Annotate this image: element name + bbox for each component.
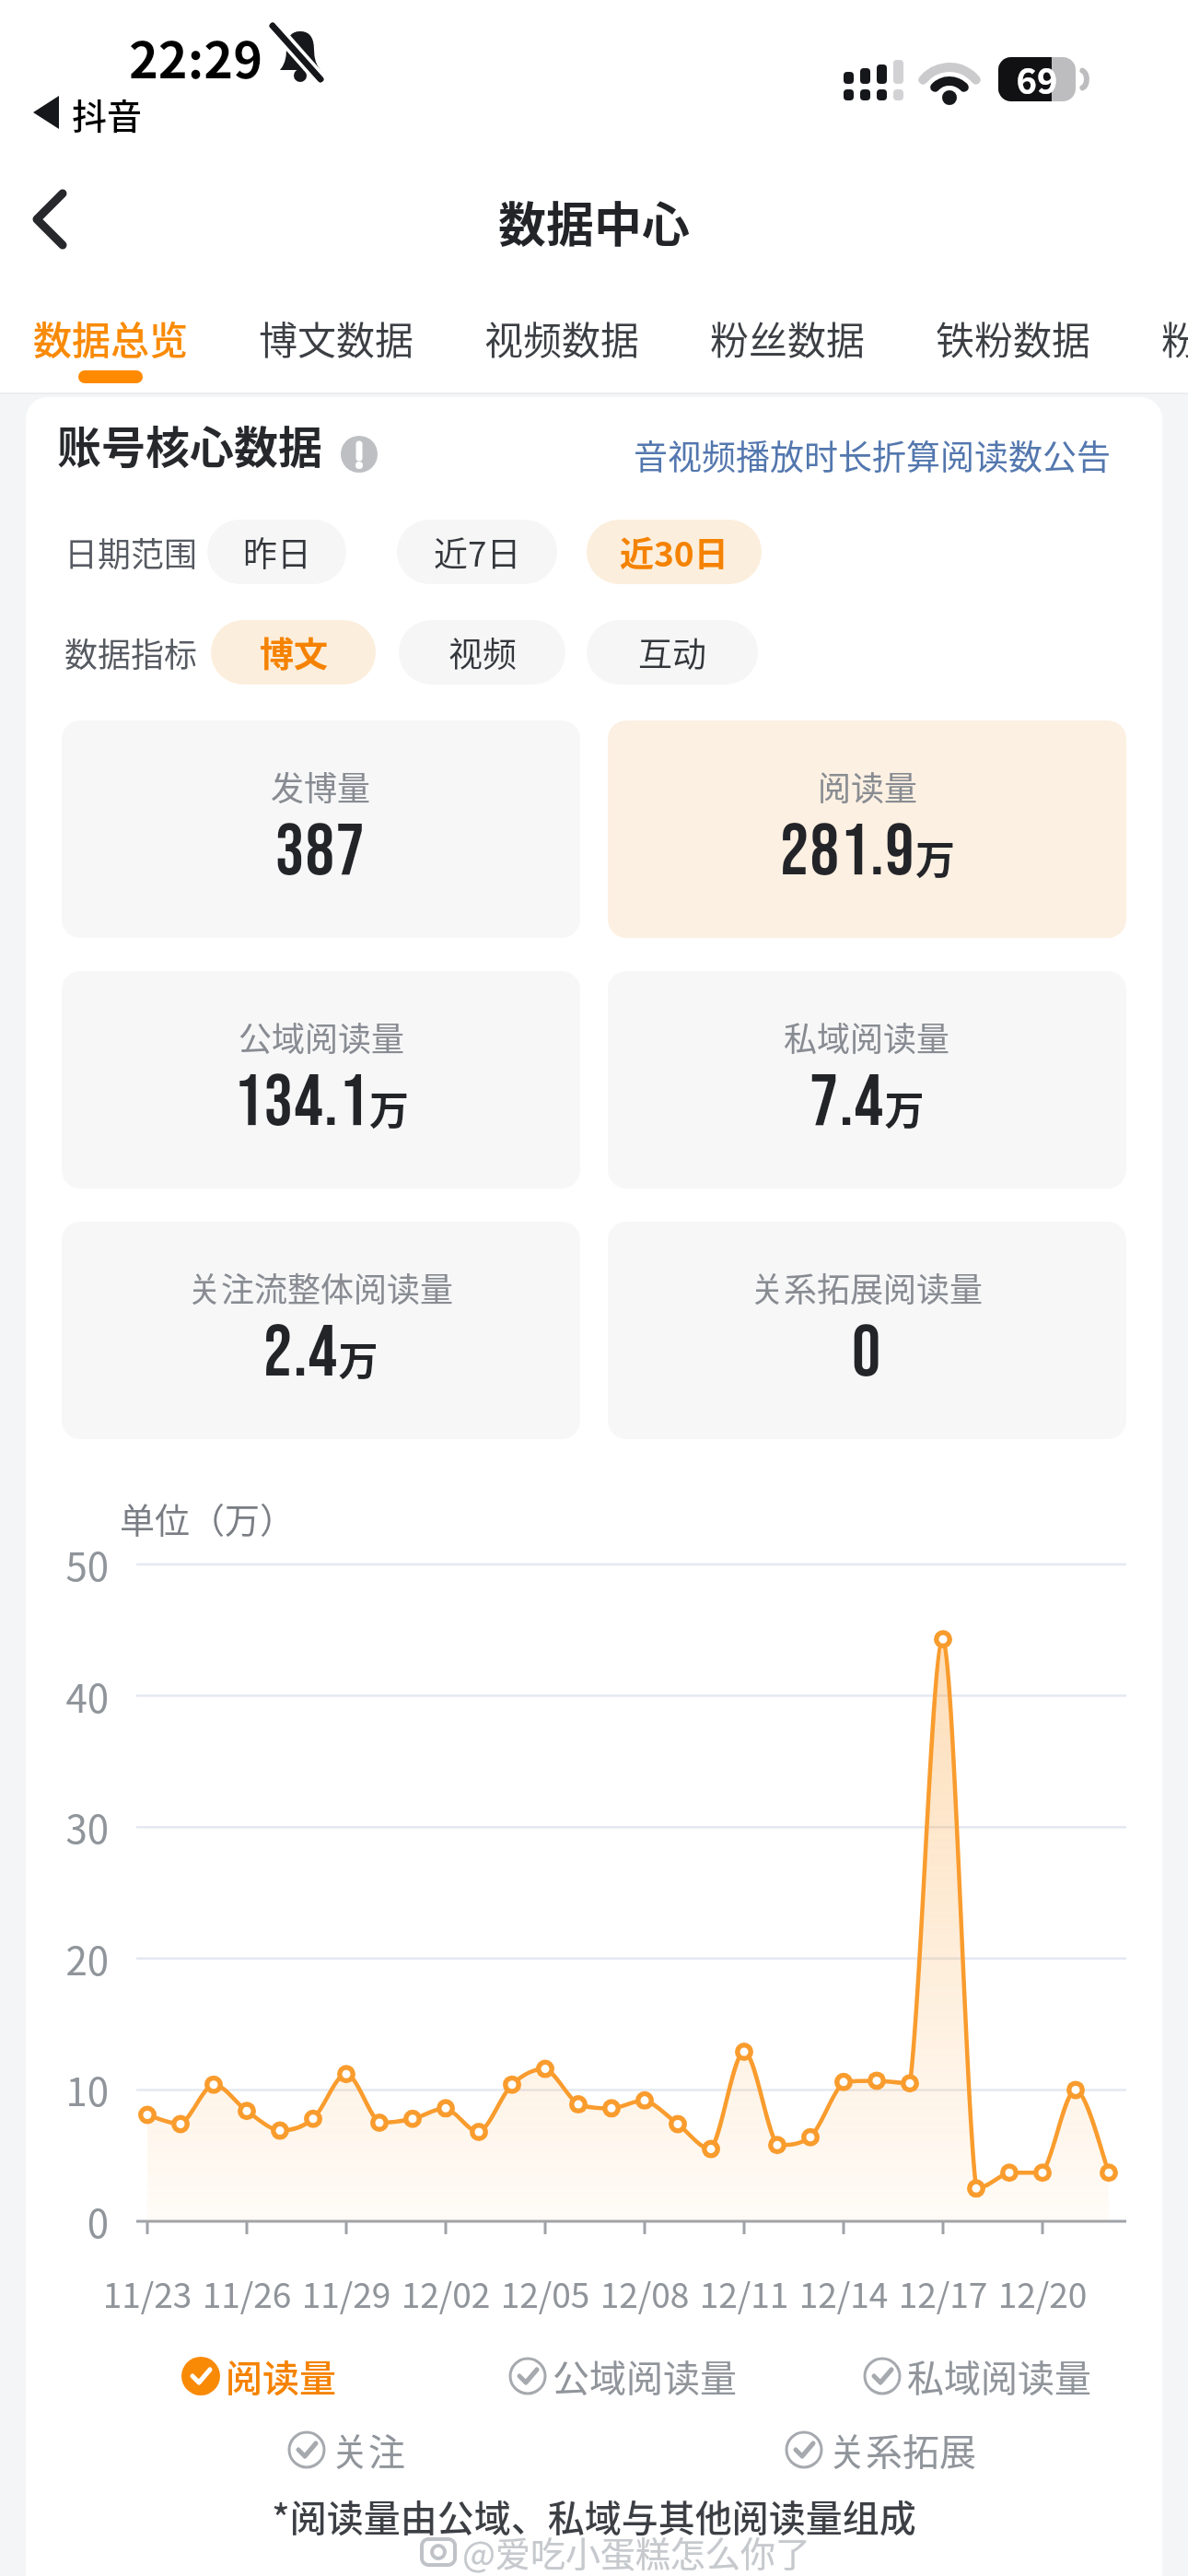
staticText: 134.1万 [234, 1060, 409, 1147]
staticText: 视频数据 [484, 310, 640, 366]
staticText: 2.4万 [263, 1311, 379, 1398]
staticText: 40 [0, 1668, 109, 1724]
staticText: 12/14 [788, 2268, 899, 2318]
staticText: 关注流整体阅读量 [188, 1263, 454, 1311]
staticText: 12/05 [490, 2268, 600, 2318]
staticText: 数据指标 [64, 628, 198, 676]
button[interactable]: 发博量 [62, 720, 580, 938]
staticText: 音视频播放时长折算阅读数公告 [634, 430, 1111, 480]
staticText: 387 [275, 810, 367, 896]
staticText: 关注 [332, 2423, 405, 2476]
staticText: 视频 [448, 627, 517, 677]
button[interactable]: 数据总览 [33, 310, 189, 366]
staticText: 近7日 [434, 527, 521, 577]
staticText: 私域阅读量 [907, 2349, 1091, 2403]
button[interactable]: 私域阅读量 [907, 2349, 1091, 2403]
staticText: 数据中心 [0, 187, 1188, 256]
staticText: 12/20 [987, 2268, 1098, 2318]
staticText: 互动 [638, 627, 706, 677]
staticText: 12/02 [390, 2268, 501, 2318]
staticText: 30 [0, 1798, 109, 1855]
button[interactable]: 关注流整体阅读量 [62, 1222, 580, 1439]
button[interactable]: 关注 [332, 2423, 405, 2476]
staticText: *阅读量由公域、私域与其他阅读量组成 [0, 2489, 1188, 2543]
staticText: 20 [0, 1930, 109, 1986]
button[interactable]: 近30日 [587, 520, 762, 584]
button[interactable]: 粉丝趋势 [1161, 310, 1188, 366]
staticText: 昨日 [243, 527, 311, 577]
staticText: 7.4万 [809, 1060, 925, 1147]
staticText: @爱吃小蛋糕怎么你了 [462, 2526, 810, 2576]
staticText: 单位（万） [120, 1493, 296, 1543]
staticText: 日期范围 [64, 528, 198, 576]
staticText: 发博量 [271, 762, 371, 810]
staticText: 10 [0, 2061, 109, 2117]
button[interactable]: 互动 [587, 620, 758, 685]
button[interactable]: 关系拓展 [829, 2423, 976, 2476]
button[interactable]: 铁粉数据 [936, 310, 1091, 366]
button[interactable]: 粉丝数据 [710, 310, 866, 366]
staticText: 公域阅读量 [553, 2349, 737, 2403]
staticText: 12/08 [589, 2268, 700, 2318]
staticText: 关系拓展阅读量 [751, 1263, 984, 1311]
staticText: 博文数据 [259, 310, 414, 366]
staticText: 12/11 [689, 2268, 799, 2318]
button[interactable]: 音视频播放时长折算阅读数公告 [634, 430, 1111, 480]
staticText: 281.9万 [780, 810, 955, 896]
staticText: 0 [0, 2193, 109, 2249]
button[interactable]: 公域阅读量 [553, 2349, 737, 2403]
staticText: 粉丝趋势 [1161, 310, 1188, 366]
button[interactable]: 博文 [211, 620, 376, 685]
staticText: 关系拓展 [829, 2423, 976, 2476]
staticText: 12/17 [888, 2268, 998, 2318]
button[interactable]: 昨日 [207, 520, 346, 584]
button[interactable] [18, 173, 98, 258]
button[interactable]: 视频 [399, 620, 565, 685]
staticText: 近30日 [620, 527, 728, 577]
button[interactable]: 公域阅读量 [62, 971, 580, 1188]
staticText: 11/29 [291, 2268, 402, 2318]
staticText: 数据总览 [33, 310, 189, 366]
staticText: 铁粉数据 [936, 310, 1091, 366]
button[interactable]: 关系拓展阅读量 [608, 1222, 1126, 1439]
button[interactable]: 私域阅读量 [608, 971, 1126, 1188]
button[interactable]: 阅读量 [608, 720, 1126, 938]
staticText: 博文 [260, 627, 328, 677]
staticText: 私域阅读量 [784, 1013, 950, 1060]
button[interactable]: 近7日 [397, 520, 557, 584]
button[interactable]: 博文数据 [259, 310, 414, 366]
staticText: 11/26 [192, 2268, 302, 2318]
staticText: 账号核心数据 [57, 412, 323, 476]
staticText: 22:29 [129, 20, 262, 92]
staticText: 0 [852, 1311, 882, 1398]
staticText: 阅读量 [226, 2349, 336, 2403]
button[interactable]: 阅读量 [226, 2349, 336, 2403]
staticText: 69 [998, 53, 1076, 104]
staticText: 50 [0, 1536, 109, 1592]
staticText: 公域阅读量 [239, 1013, 405, 1060]
staticText: 11/23 [92, 2268, 203, 2318]
staticText: 粉丝数据 [710, 310, 866, 366]
staticText: 抖音 [72, 88, 143, 139]
staticText: 阅读量 [818, 762, 918, 810]
button[interactable]: 视频数据 [484, 310, 640, 366]
